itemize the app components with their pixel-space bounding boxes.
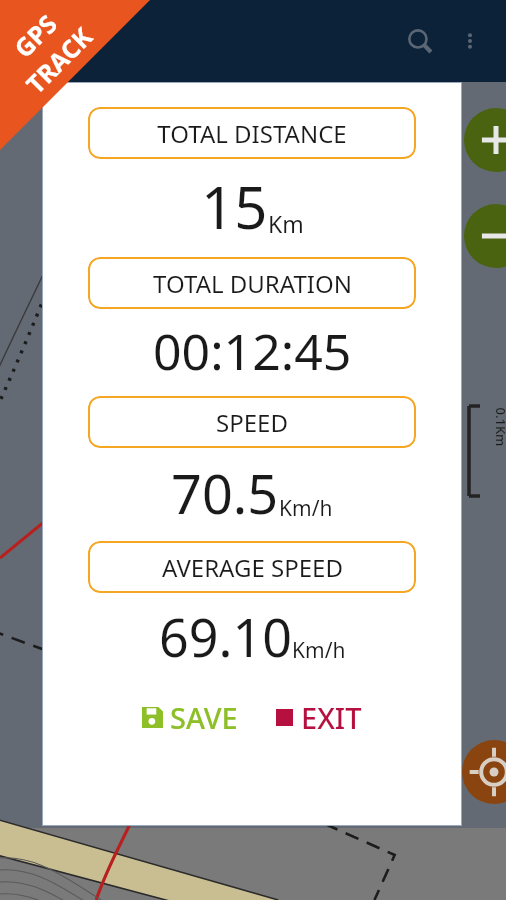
button[interactable]: AVERAGE SPEED	[88, 541, 416, 593]
button[interactable]: More options	[446, 17, 494, 65]
button[interactable]: Zoom in	[464, 108, 506, 172]
button[interactable]: SAVE	[136, 694, 244, 741]
staticText: 00:12:45	[153, 317, 352, 385]
button[interactable]: Search	[396, 17, 444, 65]
staticText: 70.5	[171, 456, 279, 530]
staticText: 15	[201, 167, 268, 246]
staticText: 0.1Km	[491, 407, 506, 446]
button[interactable]: EXIT	[270, 694, 368, 741]
staticText: TOTAL DURATION	[153, 267, 352, 300]
staticText: GPS	[6, 7, 64, 65]
staticText: SAVE	[170, 698, 238, 737]
button[interactable]: TOTAL DISTANCE	[88, 107, 416, 159]
staticText: AVERAGE SPEED	[162, 551, 343, 584]
button[interactable]: Zoom out	[464, 204, 506, 268]
button[interactable]: My location	[462, 740, 506, 804]
staticText: Km/h	[292, 636, 346, 665]
staticText: TRACK	[18, 19, 99, 101]
staticText: Km/h	[279, 494, 333, 523]
staticText: 69.10	[159, 601, 292, 672]
button[interactable]: TOTAL DURATION	[88, 257, 416, 309]
staticText: SPEED	[216, 406, 288, 439]
staticText: Km	[268, 208, 304, 239]
staticText: TOTAL DISTANCE	[157, 117, 347, 150]
staticText: EXIT	[301, 698, 362, 737]
button[interactable]: SPEED	[88, 396, 416, 448]
